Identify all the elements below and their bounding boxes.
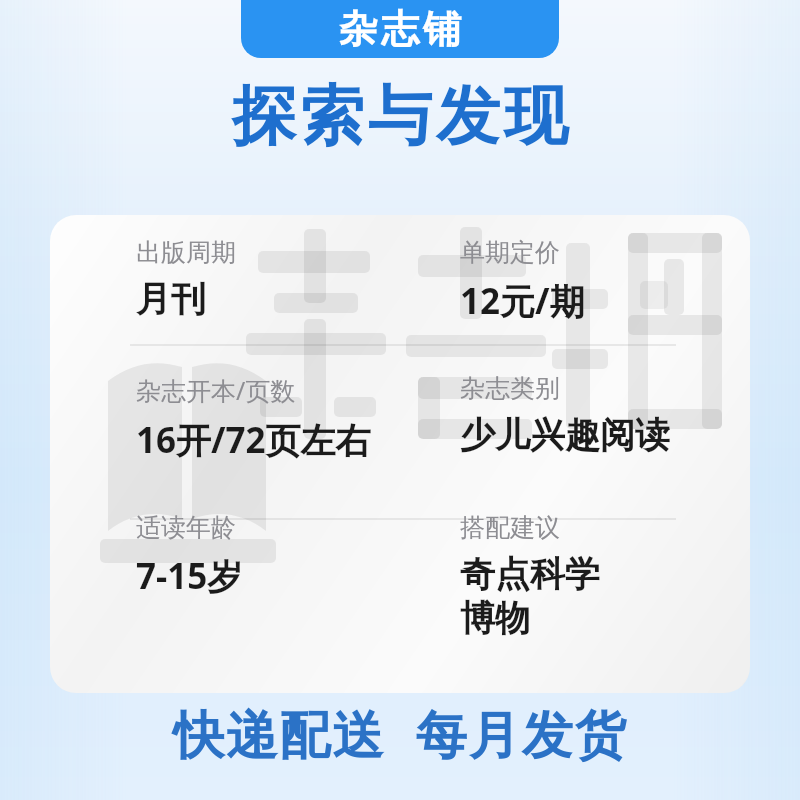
staticText: 单期定价 xyxy=(460,237,560,268)
button[interactable]: 适读年龄 xyxy=(136,512,460,600)
staticText: 月刊 xyxy=(136,277,206,321)
button[interactable]: 出版周期 xyxy=(136,237,460,321)
staticText: 杂志开本/页数 xyxy=(136,373,296,407)
staticText: 奇点科学 xyxy=(460,552,600,596)
button[interactable]: 杂志类别 xyxy=(460,373,750,457)
button[interactable]: 搭配建议 xyxy=(460,512,750,640)
staticText: 杂志类别 xyxy=(460,373,560,404)
staticText: 杂志铺 xyxy=(337,5,463,53)
staticText: 12元/期 xyxy=(460,277,585,325)
staticText: 适读年龄 xyxy=(136,512,236,543)
staticText: 16开/72页左右 xyxy=(136,416,371,464)
button[interactable]: 单期定价 xyxy=(460,237,750,325)
staticText: 少儿兴趣阅读 xyxy=(460,413,670,457)
other: 杂志信息 xyxy=(50,215,750,693)
staticText: 出版周期 xyxy=(136,237,236,268)
staticText: 7-15岁 xyxy=(136,552,243,600)
staticText: 快递配送 每月发货 xyxy=(173,698,628,768)
staticText: 搭配建议 xyxy=(460,512,560,543)
staticText: 博物 xyxy=(460,596,530,640)
staticText: 探索与发现 xyxy=(230,76,570,157)
button[interactable]: 杂志铺 xyxy=(241,0,559,58)
button[interactable]: 杂志开本/页数 xyxy=(136,373,460,464)
